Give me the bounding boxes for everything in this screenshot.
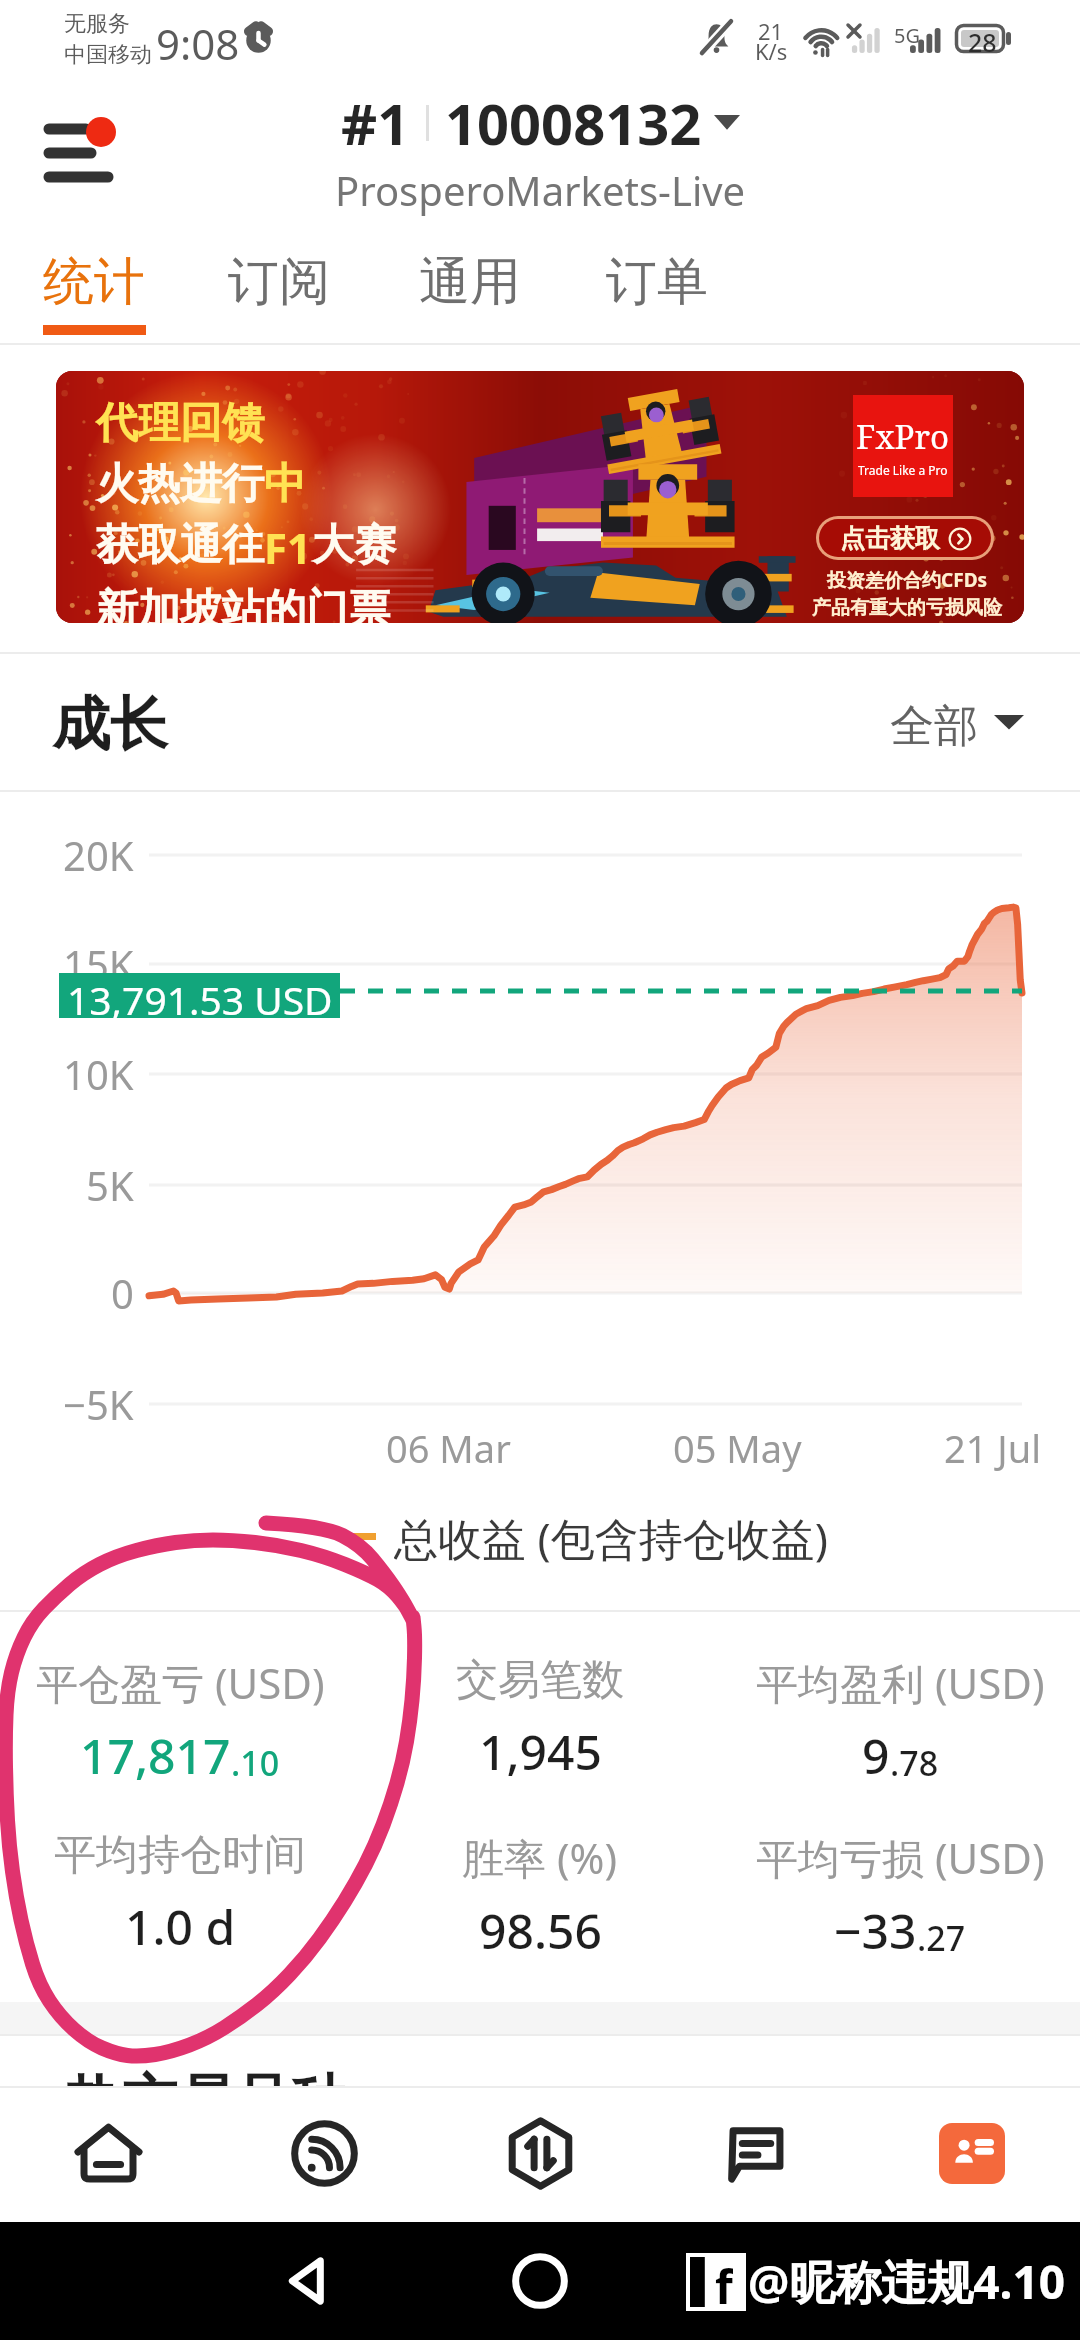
- staticText: 全部: [890, 699, 978, 754]
- button[interactable]: 全部: [890, 698, 1024, 754]
- staticText: 火热进行: [96, 458, 264, 511]
- staticText: 05 May: [673, 1422, 802, 1474]
- staticText: 新加坡站的门票: [96, 584, 390, 623]
- button[interactable]: Accounts: [864, 2099, 1080, 2207]
- staticText: 9: [862, 1723, 890, 1788]
- staticText: 1,945: [479, 1719, 602, 1784]
- staticText: 10K: [63, 1047, 134, 1101]
- staticText: 10008132: [445, 85, 702, 161]
- staticText: 98.56: [479, 1898, 602, 1963]
- staticText: 9:08: [156, 15, 240, 72]
- staticText: f: [715, 2255, 733, 2309]
- staticText: 15K: [63, 937, 134, 991]
- staticText: 21: [758, 16, 784, 46]
- button[interactable]: 点击获取: [816, 516, 994, 560]
- staticText: 投资差价合约CFDs: [827, 567, 988, 593]
- staticText: .10: [231, 1740, 280, 1786]
- staticText: 平均亏损 (USD): [756, 1829, 1045, 1886]
- staticText: 总收益 (包含持仓收益): [394, 1508, 828, 1564]
- staticText: −33: [834, 1898, 917, 1963]
- staticText: 代理回馈: [96, 397, 264, 450]
- button[interactable]: Trade: [432, 2099, 648, 2207]
- staticText: ProsperoMarkets-Live: [335, 163, 746, 217]
- staticText: 5K: [86, 1158, 134, 1212]
- staticText: FxPro: [856, 414, 950, 459]
- staticText: 13,791.53 USD: [67, 973, 333, 1018]
- staticText: .27: [917, 1915, 966, 1961]
- button[interactable]: 订阅: [195, 236, 363, 344]
- staticText: @昵称违规4.10: [748, 2250, 1066, 2313]
- button[interactable]: 通用: [386, 236, 554, 344]
- staticText: 5G: [894, 22, 920, 49]
- staticText: #1: [341, 85, 410, 161]
- staticText: 平均持仓时间: [54, 1829, 306, 1882]
- staticText: 订单: [606, 250, 708, 314]
- button[interactable]: Home: [0, 2099, 216, 2207]
- staticText: 大赛: [312, 519, 396, 572]
- staticText: 热交易品种: [66, 2066, 346, 2137]
- staticText: 统计: [43, 250, 145, 314]
- staticText: 平仓盈亏 (USD): [36, 1654, 325, 1711]
- staticText: K/s: [755, 36, 788, 66]
- button[interactable]: 代理回馈: [56, 371, 1024, 623]
- staticText: 成长: [52, 688, 168, 761]
- staticText: 通用: [419, 250, 521, 314]
- staticText: 交易笔数: [456, 1654, 624, 1707]
- staticText: 订阅: [228, 250, 330, 314]
- staticText: 中: [264, 458, 306, 511]
- staticText: 1.0 d: [125, 1894, 236, 1959]
- staticText: 无服务: [64, 10, 130, 38]
- button[interactable]: Messages: [648, 2099, 864, 2207]
- button[interactable]: 订单: [573, 236, 741, 344]
- staticText: 21 Jul: [944, 1422, 1042, 1474]
- staticText: −5K: [63, 1377, 134, 1431]
- staticText: 17,817: [80, 1723, 231, 1788]
- staticText: .78: [890, 1740, 939, 1786]
- staticText: 平均盈利 (USD): [756, 1654, 1045, 1711]
- staticText: Trade Like a Pro: [858, 462, 948, 478]
- staticText: 06 Mar: [386, 1422, 511, 1474]
- staticText: 点击获取: [840, 523, 940, 554]
- staticText: 胜率 (%): [462, 1829, 618, 1886]
- staticText: F1: [264, 519, 312, 576]
- button[interactable]: Menu: [26, 100, 136, 200]
- staticText: 产品有重大的亏损风险: [812, 596, 1002, 620]
- staticText: 20K: [63, 828, 134, 882]
- staticText: 28: [968, 25, 997, 59]
- staticText: 获取通往: [96, 519, 264, 572]
- button[interactable]: 统计: [10, 236, 178, 344]
- staticText: 0: [111, 1266, 134, 1320]
- staticText: 中国移动: [64, 41, 152, 69]
- button[interactable]: Quotes: [216, 2099, 432, 2207]
